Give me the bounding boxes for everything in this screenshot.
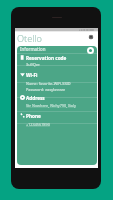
staticText: Otello — [17, 32, 42, 45]
button[interactable]: Address — [17, 95, 97, 112]
staticText: +1234567890 — [26, 122, 50, 127]
staticText: Address — [26, 95, 45, 101]
staticText: Phone — [26, 113, 41, 119]
button[interactable]: Phone — [17, 113, 97, 130]
staticText: Name: favorite-WiFi-SSID — [26, 81, 71, 86]
staticText: Str Nowhere, Richy790, Italy — [26, 103, 76, 108]
staticText: Reservation code — [26, 55, 67, 61]
staticText: Wi-Fi — [26, 72, 38, 78]
button[interactable]: Wi-Fi — [17, 72, 97, 97]
button[interactable]: Reservation code — [17, 55, 97, 66]
staticText: 3u9Qze — [26, 62, 40, 67]
button[interactable]: Settings — [87, 33, 94, 40]
button[interactable]: Add — [87, 47, 94, 54]
staticText: Password: easybreeze — [26, 87, 66, 92]
staticText: Information — [20, 46, 46, 52]
